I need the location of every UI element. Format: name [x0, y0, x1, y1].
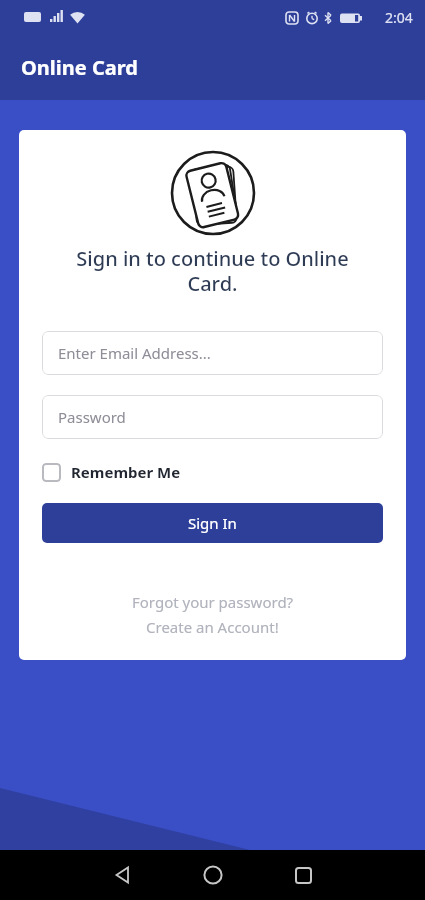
- button[interactable]: [188, 850, 238, 900]
- button[interactable]: Create an Account!: [146, 617, 279, 637]
- button[interactable]: [278, 850, 328, 900]
- staticText: Sign In: [188, 513, 237, 533]
- staticText: Sign in to continue to Online Card.: [76, 245, 349, 297]
- button[interactable]: Sign In: [42, 503, 383, 543]
- staticText: Enter Email Address...: [58, 343, 211, 363]
- button[interactable]: Remember Me: [42, 462, 383, 482]
- button[interactable]: Enter Email Address...: [42, 331, 383, 375]
- button[interactable]: Forgot your password?: [132, 592, 294, 612]
- button[interactable]: [98, 850, 148, 900]
- staticText: Password: [58, 407, 126, 427]
- staticText: 2:04: [385, 8, 413, 27]
- button[interactable]: Password: [42, 395, 383, 439]
- staticText: Remember Me: [71, 462, 181, 482]
- staticText: Online Card: [21, 54, 138, 81]
